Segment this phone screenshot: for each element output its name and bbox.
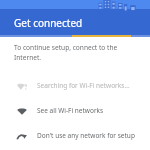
staticText: To continue setup, connect to the Intern… (14, 43, 140, 62)
staticText: Searching for Wi-Fi networks… (37, 81, 130, 90)
staticText: Don't use any network for setup (37, 131, 135, 140)
staticText: Get connected (14, 16, 83, 30)
staticText: See all Wi-Fi networks (37, 106, 104, 115)
button[interactable]: Searching for Wi-Fi networks (0, 73, 150, 98)
button[interactable]: Don't use any network for setup (0, 123, 150, 148)
button[interactable]: See all Wi-Fi networks (0, 98, 150, 123)
